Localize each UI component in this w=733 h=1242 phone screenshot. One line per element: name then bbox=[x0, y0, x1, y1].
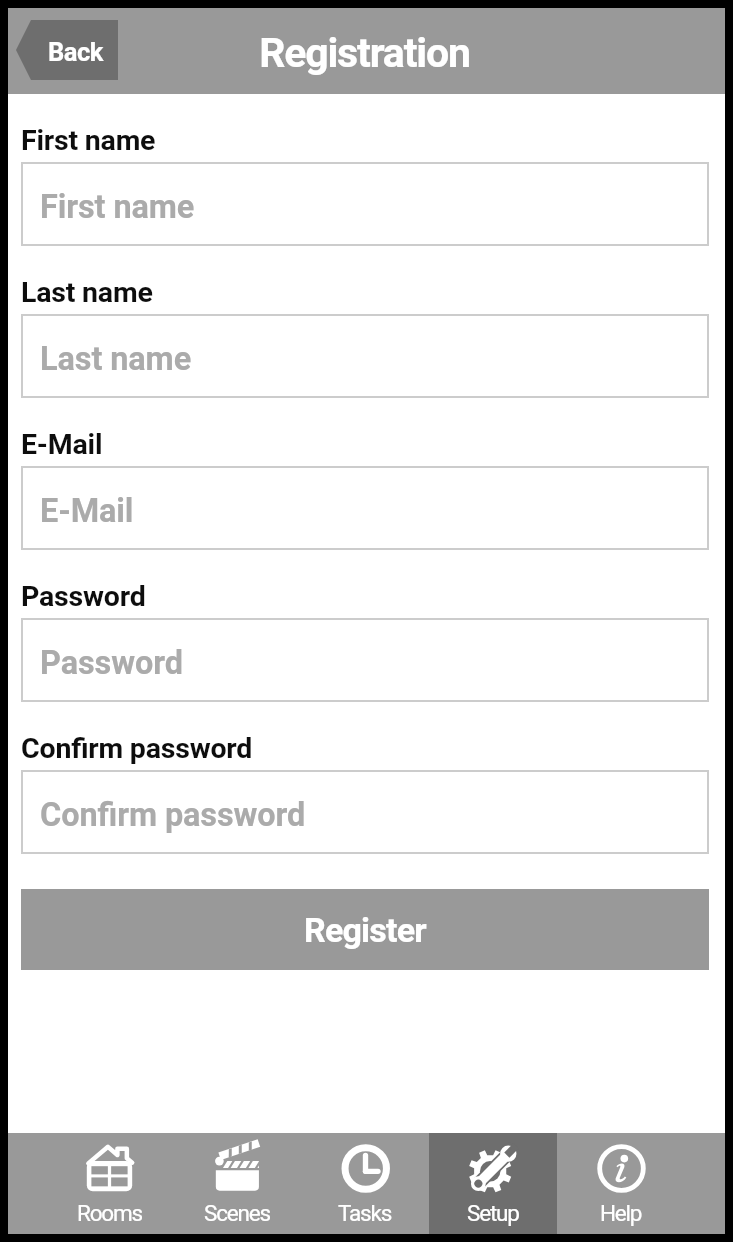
staticText: Registration bbox=[6, 29, 723, 77]
staticText: Back bbox=[48, 37, 103, 67]
staticText: Confirm password bbox=[40, 796, 306, 834]
staticText: Scenes bbox=[204, 1200, 270, 1226]
button[interactable]: First name bbox=[21, 162, 709, 246]
button[interactable]: Register bbox=[21, 889, 709, 970]
staticText: Help bbox=[600, 1200, 642, 1226]
staticText: E-Mail bbox=[40, 492, 134, 530]
staticText: First name bbox=[21, 124, 156, 157]
staticText: Last name bbox=[40, 340, 192, 378]
staticText: E-Mail bbox=[21, 428, 103, 461]
staticText: Confirm password bbox=[21, 732, 253, 765]
staticText: Password bbox=[21, 580, 146, 613]
staticText: Tasks bbox=[338, 1200, 392, 1226]
staticText: Last name bbox=[21, 276, 153, 309]
button[interactable]: Back bbox=[16, 20, 118, 80]
button[interactable]: Tasks bbox=[301, 1133, 429, 1234]
staticText: First name bbox=[40, 188, 195, 226]
button[interactable]: Scenes bbox=[173, 1133, 301, 1234]
button[interactable]: Setup bbox=[429, 1133, 557, 1234]
button[interactable]: E-Mail bbox=[21, 466, 709, 550]
staticText: Password bbox=[40, 644, 183, 682]
button[interactable]: Last name bbox=[21, 314, 709, 398]
staticText: Rooms bbox=[77, 1200, 142, 1226]
button[interactable]: Password bbox=[21, 618, 709, 702]
button[interactable]: Confirm password bbox=[21, 770, 709, 854]
button[interactable]: Rooms bbox=[45, 1133, 173, 1234]
staticText: Register bbox=[304, 910, 426, 950]
button[interactable]: Help bbox=[557, 1133, 685, 1234]
staticText: Setup bbox=[467, 1200, 519, 1226]
